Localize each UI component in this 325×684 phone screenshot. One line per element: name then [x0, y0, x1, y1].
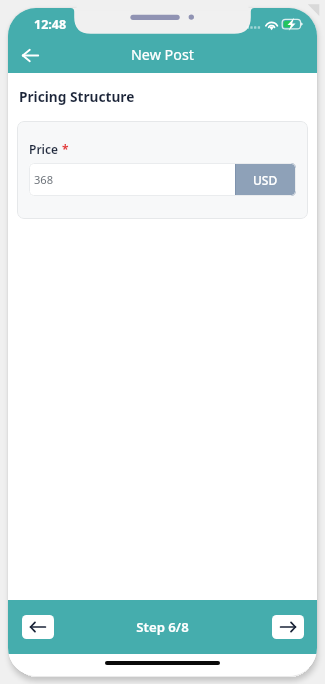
staticText: USD: [253, 172, 278, 188]
staticText: Pricing Structure: [19, 87, 135, 106]
staticText: 12:48: [34, 16, 67, 33]
staticText: 368: [34, 172, 235, 187]
button[interactable]: Next step: [272, 615, 304, 639]
button[interactable]: Previous step: [22, 615, 54, 639]
staticText: *: [62, 141, 69, 157]
staticText: Price: [29, 141, 59, 157]
button[interactable]: Back: [13, 38, 47, 72]
staticText: New Post: [131, 45, 194, 64]
staticText: Step 6/8: [136, 618, 189, 636]
